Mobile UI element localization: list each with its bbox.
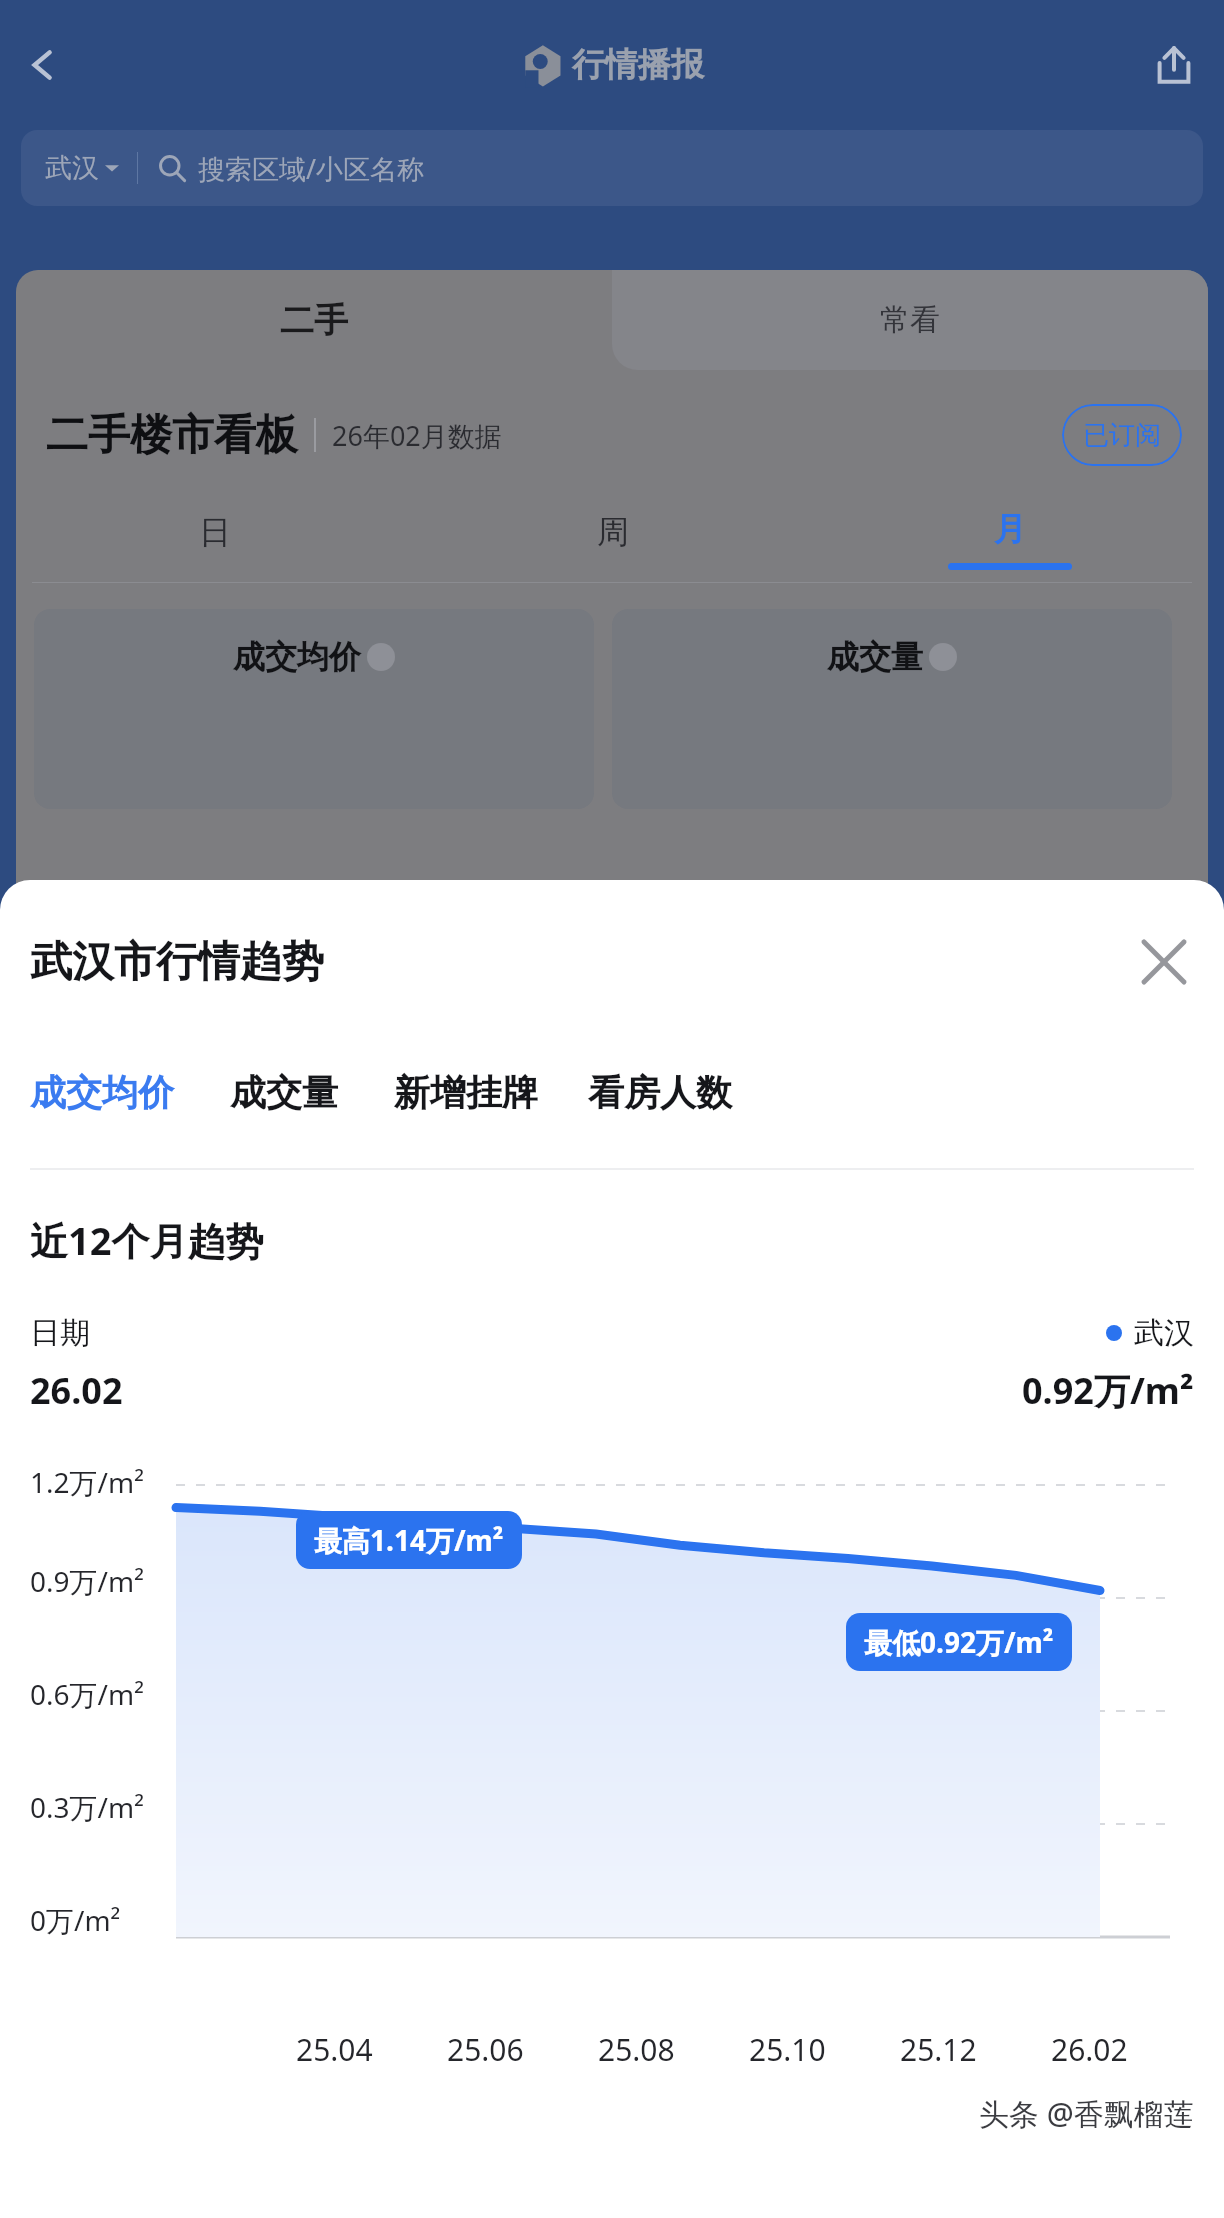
staticText: 26年02月数据	[332, 417, 502, 454]
button[interactable]: 成交均价	[30, 1044, 174, 1140]
staticText: 武汉市行情趋势	[30, 936, 324, 989]
staticText: 25.06	[447, 2029, 524, 2070]
button[interactable]: 日	[16, 496, 414, 582]
staticText: 最高1.14万/m²	[314, 1521, 504, 1559]
staticText: 二手楼市看板	[46, 409, 298, 462]
staticText: 搜索区域/小区名称	[198, 150, 425, 187]
staticText: 常看	[880, 301, 940, 339]
button[interactable]: 周	[414, 496, 811, 582]
staticText: 0万/m²	[30, 1901, 121, 1939]
staticText: 0.3万/m²	[30, 1788, 144, 1826]
staticText: 武汉	[45, 151, 99, 185]
staticText: 成交量	[827, 637, 923, 677]
staticText: 看房人数	[588, 1070, 732, 1115]
staticText: 最低0.92万/m²	[864, 1623, 1054, 1661]
button[interactable]: Close	[1126, 924, 1202, 1000]
staticText: 0.92万/m²	[1022, 1366, 1194, 1415]
button[interactable]: 成交均价	[34, 609, 594, 809]
staticText: 25.08	[598, 2029, 675, 2070]
staticText: 25.12	[900, 2029, 977, 2070]
button[interactable]: 武汉	[21, 130, 1203, 206]
staticText: 25.04	[296, 2029, 373, 2070]
button[interactable]: 成交量	[612, 609, 1172, 809]
staticText: 1.2万/m²	[30, 1463, 144, 1501]
staticText: 成交量	[230, 1070, 338, 1115]
staticText: 已订阅	[1083, 419, 1161, 452]
button[interactable]: Share	[1138, 29, 1210, 101]
button[interactable]: 常看	[612, 270, 1208, 370]
staticText: 新增挂牌	[394, 1070, 538, 1115]
button[interactable]: 看房人数	[588, 1044, 732, 1140]
staticText: 26.02	[1051, 2029, 1128, 2070]
button[interactable]: 成交量	[230, 1044, 338, 1140]
staticText: 成交均价	[233, 637, 361, 677]
staticText: 武汉	[1134, 1314, 1194, 1352]
staticText: 26.02	[30, 1366, 123, 1415]
button[interactable]: 月	[811, 496, 1208, 582]
button[interactable]: Back	[10, 32, 76, 98]
button[interactable]: 二手	[16, 270, 612, 370]
staticText: 0.9万/m²	[30, 1562, 144, 1600]
button[interactable]: 新增挂牌	[394, 1044, 538, 1140]
staticText: 日	[199, 512, 231, 552]
staticText: 月	[994, 509, 1026, 549]
staticText: 二手	[280, 299, 348, 342]
staticText: 近12个月趋势	[30, 1214, 264, 1266]
staticText: 头条 @香飘榴莲	[979, 2093, 1194, 2134]
button[interactable]: 已订阅	[1062, 404, 1182, 466]
staticText: 周	[597, 512, 629, 552]
staticText: 0.6万/m²	[30, 1675, 144, 1713]
staticText: 25.10	[749, 2029, 826, 2070]
staticText: 日期	[30, 1314, 90, 1352]
staticText: 成交均价	[30, 1070, 174, 1115]
staticText: 行情播报	[572, 44, 704, 86]
